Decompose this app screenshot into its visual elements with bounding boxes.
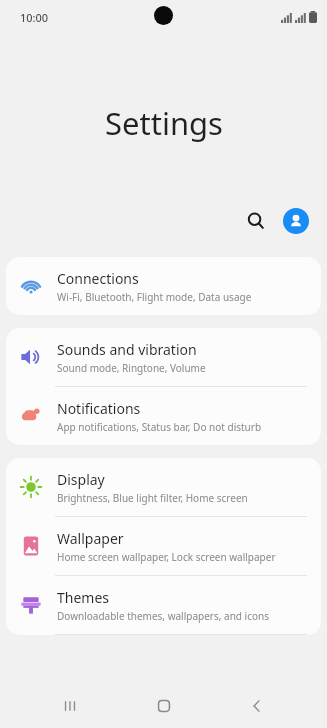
button[interactable]: Profile — [283, 208, 309, 234]
staticText: Settings — [105, 102, 223, 144]
button[interactable]: Connections — [6, 257, 321, 315]
staticText: Themes — [57, 588, 110, 607]
button[interactable]: Wallpaper — [6, 517, 321, 575]
staticText: Downloadable themes, wallpapers, and ico… — [57, 609, 269, 623]
staticText: Wallpaper — [57, 529, 124, 548]
button[interactable]: Recent apps — [46, 684, 94, 728]
button[interactable]: Back — [233, 684, 281, 728]
staticText: Sound mode, Ringtone, Volume — [57, 361, 206, 375]
staticText: Notifications — [57, 399, 141, 418]
button[interactable]: Display — [6, 458, 321, 516]
staticText: Home screen wallpaper, Lock screen wallp… — [57, 550, 276, 564]
button[interactable]: Home — [140, 684, 188, 728]
button[interactable]: Notifications — [6, 387, 321, 445]
staticText: Display — [57, 470, 105, 489]
button[interactable]: Sounds and vibration — [6, 328, 321, 386]
staticText: Wi-Fi, Bluetooth, Flight mode, Data usag… — [57, 290, 252, 304]
staticText: App notifications, Status bar, Do not di… — [57, 420, 262, 434]
button[interactable]: Search — [241, 206, 271, 236]
staticText: Connections — [57, 269, 139, 288]
button[interactable]: Themes — [6, 576, 321, 634]
staticText: 10:00 — [20, 10, 49, 25]
staticText: Sounds and vibration — [57, 340, 197, 359]
staticText: Brightness, Blue light filter, Home scre… — [57, 491, 248, 505]
